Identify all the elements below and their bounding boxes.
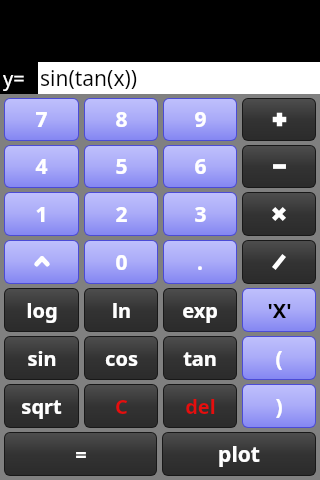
button[interactable]: 8 bbox=[85, 99, 157, 140]
button[interactable]: Multiply bbox=[243, 193, 315, 235]
button[interactable]: log bbox=[5, 289, 78, 331]
button[interactable]: Divide bbox=[243, 241, 315, 283]
staticText: 'X' bbox=[267, 297, 292, 324]
button[interactable]: sin(tan(x)) bbox=[38, 62, 320, 94]
staticText: 4 bbox=[35, 152, 48, 181]
button[interactable]: 4 bbox=[5, 146, 78, 187]
staticText: 5 bbox=[115, 152, 128, 181]
staticText: . bbox=[197, 248, 203, 277]
staticText: tan bbox=[183, 345, 217, 372]
staticText: C bbox=[115, 393, 128, 420]
button[interactable]: 6 bbox=[164, 146, 236, 187]
staticText: 8 bbox=[115, 105, 128, 134]
button[interactable]: ln bbox=[85, 289, 157, 331]
staticText: 2 bbox=[115, 200, 128, 229]
button[interactable]: ( bbox=[243, 337, 315, 379]
staticText: 0 bbox=[115, 248, 128, 277]
staticText: 7 bbox=[35, 105, 48, 134]
staticText: ( bbox=[275, 344, 283, 373]
button[interactable]: 0 bbox=[85, 241, 157, 283]
button[interactable]: 7 bbox=[5, 99, 78, 140]
button[interactable]: 1 bbox=[5, 193, 78, 235]
button[interactable]: plot bbox=[163, 433, 315, 475]
button[interactable]: = bbox=[5, 433, 156, 475]
button[interactable]: 'X' bbox=[243, 289, 315, 331]
staticText: exp bbox=[182, 297, 218, 324]
staticText: ln bbox=[112, 297, 131, 324]
button[interactable]: cos bbox=[85, 337, 157, 379]
staticText: sin(tan(x)) bbox=[40, 64, 138, 93]
staticText: 1 bbox=[35, 200, 48, 229]
button[interactable]: ) bbox=[243, 385, 315, 427]
button[interactable]: Power bbox=[5, 241, 78, 283]
button[interactable]: 9 bbox=[164, 99, 236, 140]
button[interactable]: Minus bbox=[243, 146, 315, 187]
staticText: del bbox=[185, 393, 216, 420]
staticText: ) bbox=[275, 392, 283, 421]
staticText: y= bbox=[3, 65, 25, 92]
button[interactable]: Plus bbox=[243, 99, 315, 140]
staticText: 6 bbox=[194, 152, 207, 181]
button[interactable]: sqrt bbox=[5, 385, 78, 427]
button[interactable]: exp bbox=[164, 289, 236, 331]
button[interactable]: 3 bbox=[164, 193, 236, 235]
staticText: sin bbox=[27, 345, 57, 372]
staticText: 9 bbox=[194, 105, 207, 134]
button[interactable]: . bbox=[164, 241, 236, 283]
button[interactable]: del bbox=[164, 385, 236, 427]
staticText: sqrt bbox=[21, 393, 62, 420]
button[interactable]: 5 bbox=[85, 146, 157, 187]
button[interactable]: sin bbox=[5, 337, 78, 379]
staticText: plot bbox=[218, 440, 260, 469]
button[interactable]: C bbox=[85, 385, 157, 427]
staticText: 3 bbox=[194, 200, 207, 229]
staticText: cos bbox=[105, 345, 138, 372]
staticText: = bbox=[75, 441, 87, 468]
staticText: log bbox=[26, 297, 58, 324]
button[interactable]: tan bbox=[164, 337, 236, 379]
button[interactable]: 2 bbox=[85, 193, 157, 235]
